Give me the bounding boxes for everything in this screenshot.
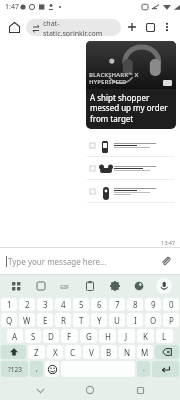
button[interactable]: chat-static.sprinklr.com xyxy=(26,19,121,36)
button[interactable]: B xyxy=(101,345,117,359)
button[interactable] xyxy=(87,180,175,202)
staticText: 5 xyxy=(79,299,84,310)
button[interactable]: 0 xyxy=(163,298,179,311)
button[interactable]: I xyxy=(127,313,143,327)
button[interactable]: Shift xyxy=(1,345,26,359)
button[interactable]: . xyxy=(137,361,150,377)
button[interactable]: G xyxy=(80,329,97,343)
button[interactable]: P xyxy=(163,313,179,327)
staticText: 8 xyxy=(133,299,138,310)
staticText: , xyxy=(36,364,38,374)
button[interactable]: J xyxy=(118,329,135,343)
staticText: GIF xyxy=(60,283,70,290)
button[interactable]: 4 xyxy=(55,298,71,311)
button[interactable]: T xyxy=(73,313,89,327)
staticText: 13:47 xyxy=(161,239,176,246)
button[interactable]: Stickers xyxy=(33,278,49,294)
button[interactable]: K xyxy=(137,329,154,343)
button[interactable]: R xyxy=(55,313,71,327)
staticText: H xyxy=(105,331,111,342)
button[interactable] xyxy=(87,157,175,179)
staticText: E xyxy=(43,315,48,326)
button[interactable]: 5 xyxy=(73,298,89,311)
button[interactable]: Back xyxy=(30,380,50,400)
staticText: N xyxy=(124,347,131,358)
button[interactable]: 2 xyxy=(19,298,35,311)
staticText: K xyxy=(143,331,148,342)
button[interactable]: X xyxy=(47,345,63,359)
button[interactable]: BLACKSHARK™ X HYPERSPEED xyxy=(86,41,176,129)
button[interactable]: 9 xyxy=(145,298,161,311)
button[interactable]: H xyxy=(99,329,116,343)
button[interactable]: 3 xyxy=(37,298,53,311)
staticText: U xyxy=(114,315,120,326)
button[interactable]: Emoji xyxy=(45,361,59,377)
button[interactable]: V xyxy=(83,345,99,359)
button[interactable]: Voice input xyxy=(156,278,172,294)
staticText: V xyxy=(89,347,94,358)
button[interactable]: 8 xyxy=(127,298,143,311)
button[interactable]: O xyxy=(145,313,161,327)
button[interactable]: Recents xyxy=(130,380,150,400)
button[interactable]: M xyxy=(137,345,153,359)
staticText: A xyxy=(12,331,18,342)
staticText: 1:47 xyxy=(5,2,19,12)
button[interactable]: Home xyxy=(80,380,100,400)
staticText: O xyxy=(150,315,157,326)
button[interactable]: 7 xyxy=(109,298,125,311)
staticText: 7 xyxy=(115,299,120,310)
staticText: 9 xyxy=(151,299,156,310)
staticText: W xyxy=(23,315,31,326)
staticText: 2 xyxy=(25,299,30,310)
staticText: 0 xyxy=(169,299,174,310)
button[interactable]: New tab xyxy=(123,18,141,36)
staticText: S xyxy=(31,331,36,342)
button[interactable]: N xyxy=(119,345,135,359)
button[interactable]: U xyxy=(109,313,125,327)
button[interactable]: Y xyxy=(91,313,107,327)
staticText: 6 xyxy=(97,299,102,310)
button[interactable]: Tabs xyxy=(141,18,159,36)
button[interactable] xyxy=(87,134,175,156)
button[interactable]: Apps xyxy=(8,278,24,294)
button[interactable]: E xyxy=(37,313,53,327)
staticText: 1 xyxy=(7,299,12,310)
staticText: Y xyxy=(97,315,102,326)
button[interactable]: S xyxy=(25,329,41,343)
button[interactable]: Attach file xyxy=(158,253,174,269)
button[interactable]: L xyxy=(156,329,173,343)
staticText: D xyxy=(48,331,54,342)
button[interactable]: A xyxy=(7,329,23,343)
staticText: 4 xyxy=(61,299,66,310)
staticText: I xyxy=(134,315,137,326)
button[interactable]: 6 xyxy=(91,298,107,311)
button[interactable]: Clipboard xyxy=(82,278,98,294)
button[interactable] xyxy=(86,133,176,204)
staticText: F xyxy=(67,331,72,342)
button[interactable]: Type your message here... xyxy=(0,248,180,274)
staticText: T xyxy=(79,315,84,326)
button[interactable]: , xyxy=(30,361,43,377)
button[interactable]: Q xyxy=(1,313,17,327)
button[interactable]: D xyxy=(43,329,59,343)
button[interactable]: ?123 xyxy=(1,361,28,377)
staticText: R xyxy=(61,315,66,326)
button[interactable]: Settings xyxy=(107,278,123,294)
button[interactable]: Home xyxy=(5,18,23,36)
button[interactable]: 1 xyxy=(1,298,17,311)
button[interactable]: Backspace xyxy=(155,345,179,359)
button[interactable]: Themes xyxy=(131,278,147,294)
button[interactable]: Enter xyxy=(152,361,179,377)
staticText: . xyxy=(143,364,145,374)
button[interactable]: W xyxy=(19,313,35,327)
staticText: BLACKSHARK™ X HYPERSPEED xyxy=(89,71,139,86)
staticText: ?123 xyxy=(8,365,22,374)
staticText: 3 xyxy=(43,299,48,310)
staticText: L xyxy=(162,331,167,342)
button[interactable]: Z xyxy=(28,345,45,359)
button[interactable]: More options xyxy=(159,19,175,35)
button[interactable]: C xyxy=(65,345,81,359)
button[interactable]: GIF xyxy=(57,278,73,294)
button[interactable]: F xyxy=(61,329,78,343)
